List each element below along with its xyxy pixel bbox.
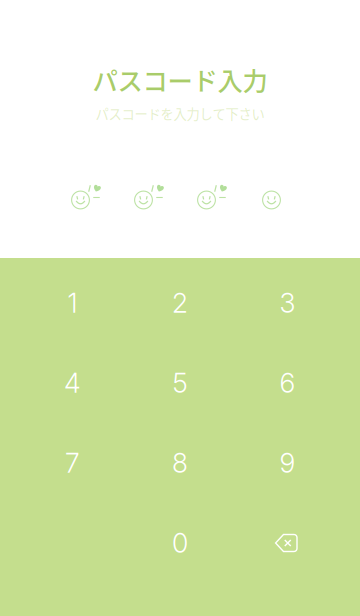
button[interactable]: 7: [19, 423, 126, 503]
staticText: 7: [65, 447, 80, 479]
button[interactable]: 8: [126, 423, 234, 503]
staticText: 9: [279, 447, 295, 479]
staticText: 5: [172, 367, 187, 399]
button[interactable]: 1: [19, 263, 126, 343]
staticText: 2: [172, 287, 188, 319]
button[interactable]: 2: [126, 263, 234, 343]
staticText: 1: [67, 287, 77, 319]
staticText: 6: [279, 367, 295, 399]
button[interactable]: 4: [19, 343, 126, 423]
staticText: 4: [64, 367, 81, 399]
staticText: 8: [172, 447, 188, 479]
staticText: パスコードを入力して下さい: [95, 104, 264, 123]
staticText: 0: [172, 527, 188, 559]
staticText: 3: [279, 287, 295, 319]
button[interactable]: 9: [234, 423, 341, 503]
button[interactable]: 3: [234, 263, 341, 343]
staticText: パスコード入力: [92, 61, 267, 98]
button[interactable]: 0: [126, 503, 234, 583]
button[interactable]: 6: [234, 343, 341, 423]
button[interactable]: 5: [126, 343, 234, 423]
button[interactable]: Delete: [234, 503, 341, 583]
